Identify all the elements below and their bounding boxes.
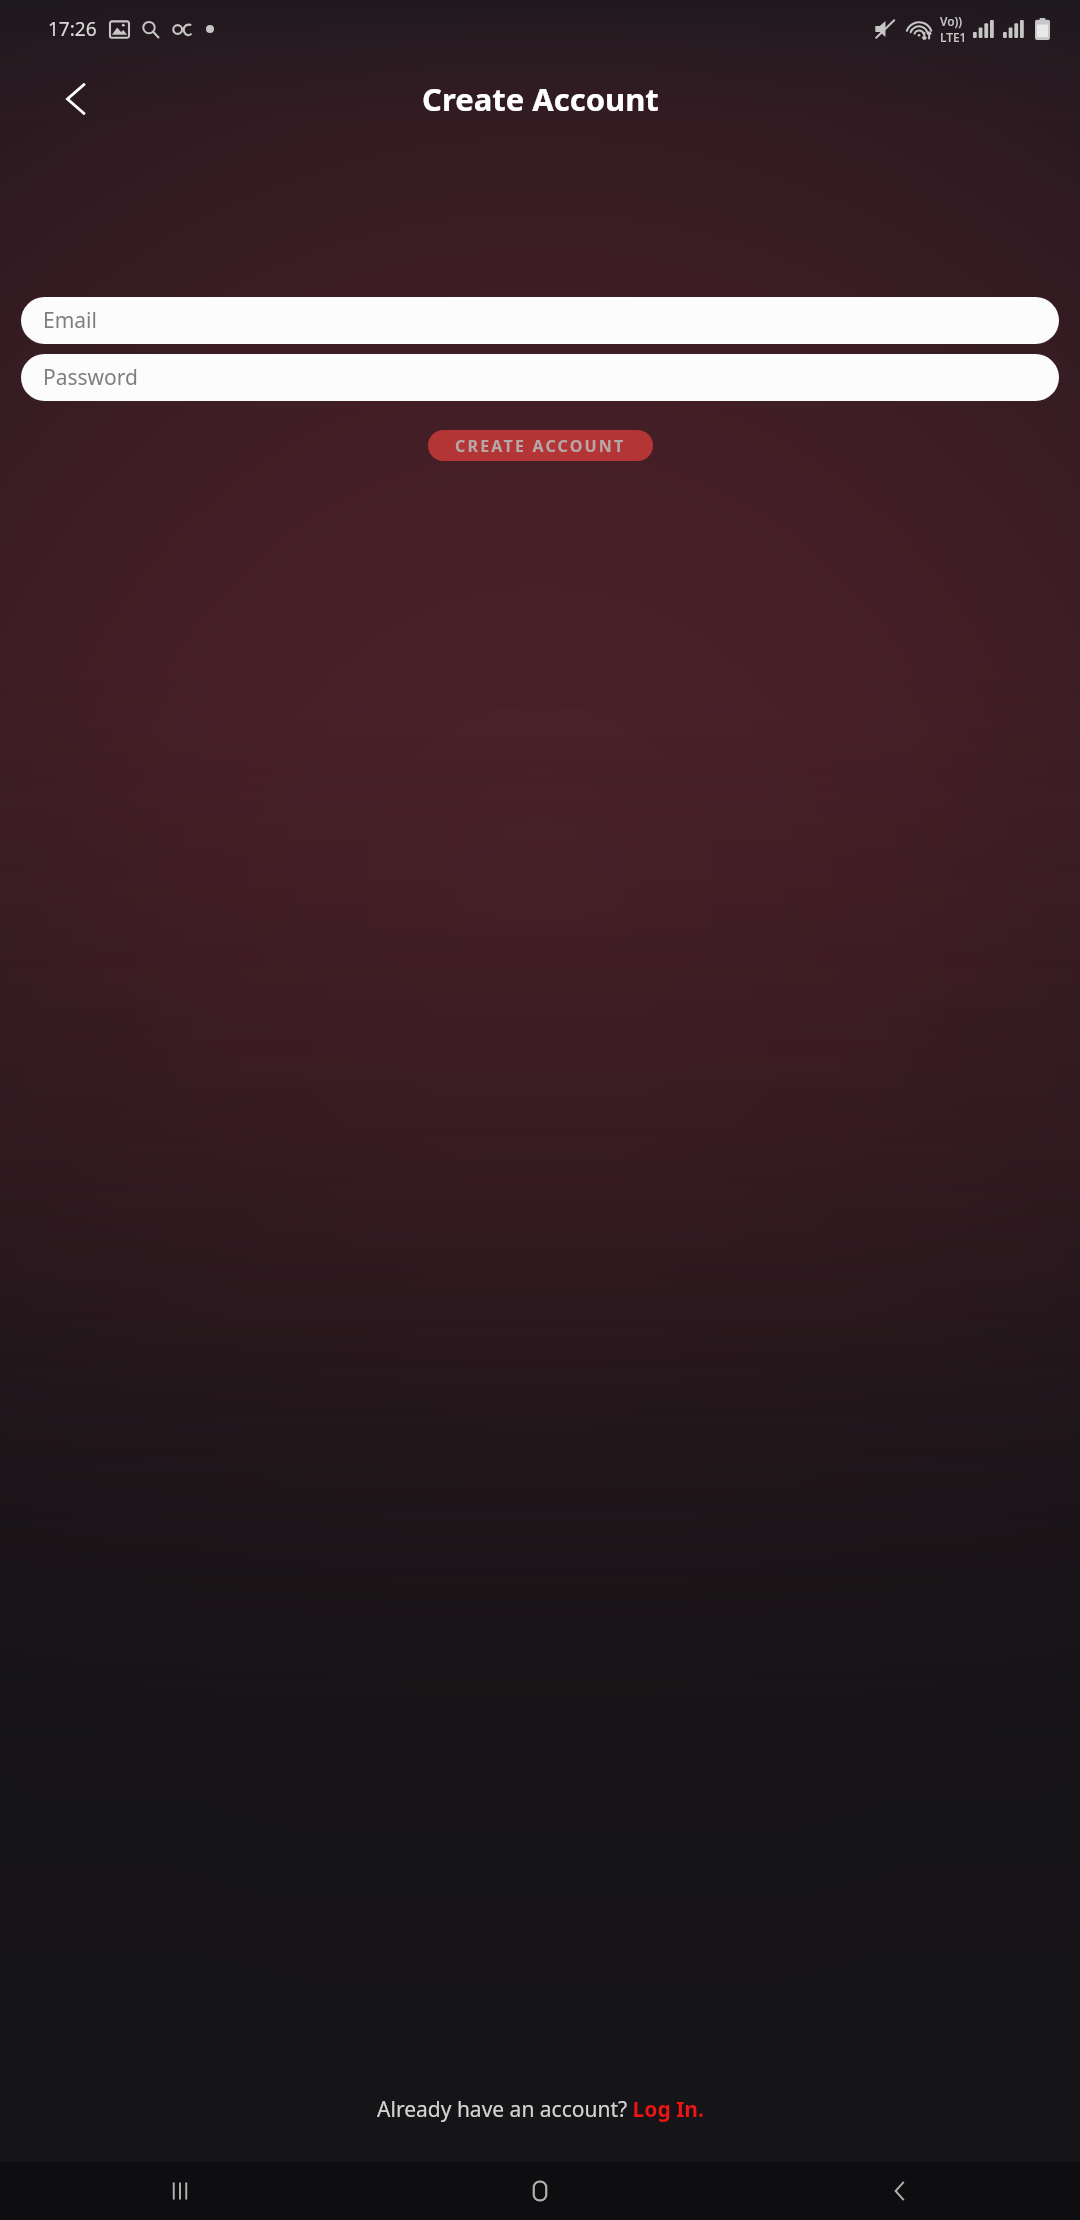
button[interactable]: Recents	[0, 2162, 360, 2220]
staticText: Create Account	[422, 78, 659, 120]
staticText: Already have an account? Log In.	[377, 2095, 704, 2124]
staticText: Vo))	[940, 13, 962, 29]
staticText: Password	[43, 363, 138, 392]
button[interactable]: Password	[21, 354, 1059, 401]
staticText: Email	[43, 306, 97, 335]
staticText: LTE1	[940, 29, 967, 45]
staticText: CREATE ACCOUNT	[455, 435, 626, 457]
button[interactable]: Email	[21, 297, 1059, 344]
button[interactable]: Already have an account? Log In.	[0, 2089, 1080, 2130]
button[interactable]: Back	[48, 70, 106, 128]
button[interactable]: Home	[360, 2162, 720, 2220]
staticText: 17:26	[48, 16, 97, 42]
button[interactable]: Back	[720, 2162, 1080, 2220]
button[interactable]: CREATE ACCOUNT	[428, 430, 653, 461]
